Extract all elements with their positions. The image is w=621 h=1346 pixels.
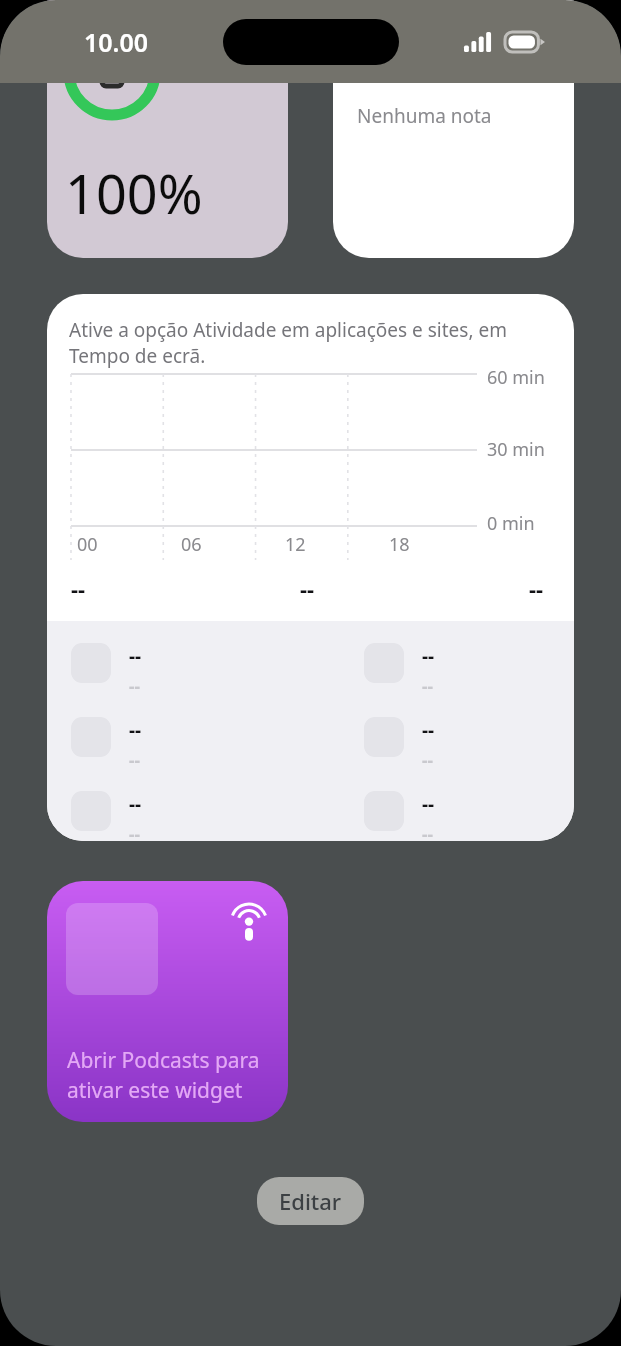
staticText: -- <box>529 573 544 603</box>
staticText: -- <box>300 573 315 603</box>
button[interactable]: Editar <box>257 1177 364 1225</box>
button[interactable]: 100% <box>47 0 288 258</box>
button[interactable]: Ative a opção Atividade em aplicações e … <box>47 294 574 841</box>
staticText: -- <box>71 573 86 603</box>
staticText: Ative a opção Atividade em aplicações e … <box>69 317 552 369</box>
staticText: 18 <box>389 532 410 557</box>
staticText: Nenhuma nota <box>357 103 492 129</box>
button[interactable]: Podcasts <box>47 881 288 1122</box>
staticText: -- <box>129 717 142 743</box>
staticText: -- <box>422 717 435 743</box>
staticText: -- <box>422 749 433 772</box>
staticText: 12 <box>285 532 306 557</box>
staticText: -- <box>129 675 140 698</box>
staticText: -- <box>422 823 433 841</box>
staticText: Editar <box>279 1186 342 1216</box>
staticText: 100% <box>65 156 203 230</box>
staticText: -- <box>129 791 142 817</box>
staticText: -- <box>129 749 140 772</box>
staticText: -- <box>422 643 435 669</box>
other: Podcasts <box>229 904 269 944</box>
staticText: -- <box>422 791 435 817</box>
staticText: 30 min <box>487 437 545 462</box>
staticText: 60 min <box>487 365 545 390</box>
staticText: -- <box>129 643 142 669</box>
staticText: -- <box>422 675 433 698</box>
staticText: -- <box>129 823 140 841</box>
staticText: 00 <box>77 532 98 557</box>
staticText: 0 min <box>487 511 535 536</box>
staticText: 06 <box>181 532 202 557</box>
staticText: Abrir Podcasts para ativar este widget <box>67 1046 266 1104</box>
button[interactable]: Nenhuma nota <box>333 0 574 258</box>
staticText: 10.00 <box>84 25 149 59</box>
